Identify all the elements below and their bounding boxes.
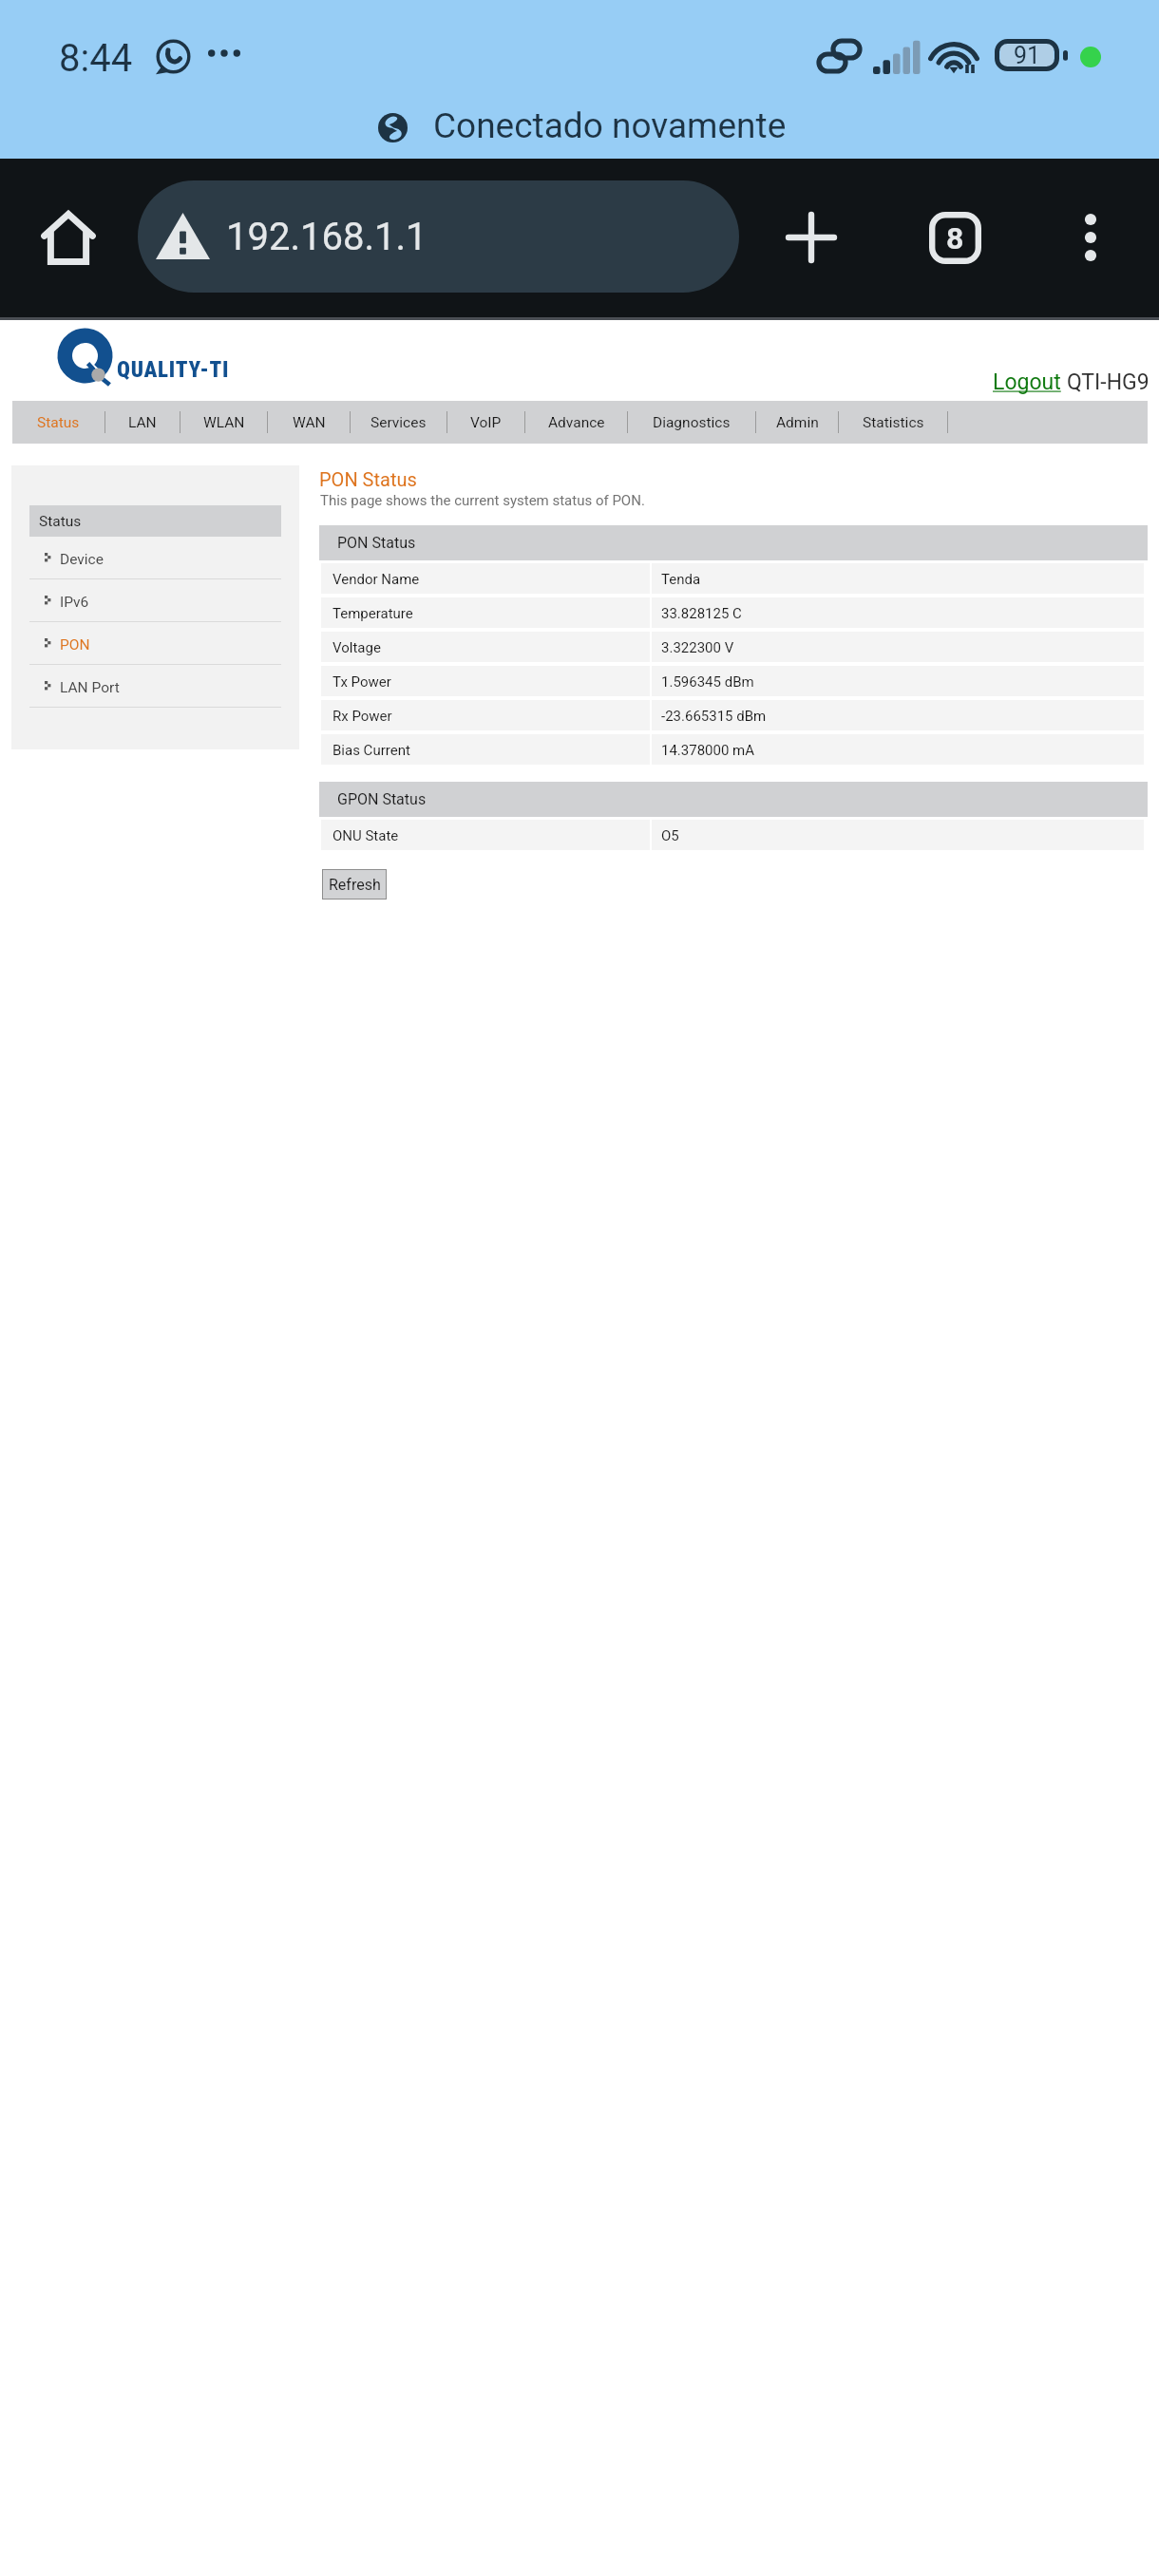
staticText: LAN	[128, 414, 157, 431]
staticText: ONU State	[332, 827, 399, 844]
staticText: Voltage	[332, 639, 381, 656]
button[interactable]: WLAN	[180, 401, 267, 444]
staticText: 1.596345 dBm	[661, 673, 754, 691]
staticText: QTI-HG9	[1067, 369, 1149, 395]
staticText: Status	[37, 414, 80, 431]
staticText: 8:44	[59, 36, 133, 81]
button[interactable]: WAN	[268, 401, 350, 444]
button[interactable]: LAN	[105, 401, 180, 444]
staticText: 3.322300 V	[661, 639, 734, 656]
button[interactable]: Statistics	[839, 401, 947, 444]
button[interactable]: New tab	[779, 205, 844, 270]
staticText: LAN Port	[60, 679, 120, 696]
button[interactable]: Logout	[993, 369, 1061, 395]
staticText: Bias Current	[332, 742, 410, 759]
staticText: O5	[661, 827, 679, 844]
staticText: 33.828125 C	[661, 605, 742, 622]
staticText: WAN	[293, 414, 326, 431]
button[interactable]: More options	[1058, 205, 1123, 270]
staticText: PON Status	[337, 534, 416, 552]
staticText: PON Status	[319, 468, 417, 490]
button[interactable]: VoIP	[447, 401, 524, 444]
button[interactable]: Device	[29, 537, 281, 578]
staticText: IPv6	[60, 594, 89, 611]
staticText: Advance	[548, 414, 605, 431]
button[interactable]: PON	[29, 622, 281, 664]
staticText: Tenda	[661, 571, 701, 588]
button[interactable]: Admin	[756, 401, 838, 444]
staticText: Device	[60, 551, 104, 568]
button[interactable]: Services	[351, 401, 446, 444]
staticText: Admin	[776, 414, 819, 431]
staticText: Temperature	[332, 605, 413, 622]
button[interactable]: Diagnostics	[628, 401, 755, 444]
staticText: 192.168.1.1	[226, 215, 427, 259]
staticText: VoIP	[470, 414, 502, 431]
button[interactable]: Status	[12, 401, 104, 444]
staticText: PON	[60, 636, 90, 653]
button[interactable]: IPv6	[29, 579, 281, 621]
staticText: 91	[1014, 42, 1041, 69]
button[interactable]: LAN Port	[29, 665, 281, 707]
staticText: Conectado novamente	[433, 105, 787, 146]
button[interactable]: 192.168.1.1	[138, 180, 739, 293]
button[interactable]: Advance	[525, 401, 627, 444]
button[interactable]: Tabs, 8 open	[922, 205, 987, 270]
staticText: This page shows the current system statu…	[320, 492, 645, 509]
staticText: 8	[946, 220, 964, 256]
staticText: Diagnostics	[653, 414, 731, 431]
staticText: Status	[39, 513, 82, 530]
staticText: -23.665315 dBm	[661, 708, 767, 725]
button[interactable]: Refresh	[322, 869, 387, 900]
staticText: QUALITY-TI	[117, 357, 230, 383]
staticText: Logout	[993, 369, 1061, 395]
staticText: Vendor Name	[332, 571, 420, 588]
staticText: Statistics	[863, 414, 924, 431]
staticText: GPON Status	[337, 790, 427, 808]
button[interactable]: Home	[36, 205, 101, 270]
staticText: Rx Power	[332, 708, 392, 725]
staticText: Tx Power	[332, 673, 391, 691]
staticText: Refresh	[329, 876, 381, 894]
staticText: 14.378000 mA	[661, 742, 755, 759]
staticText: WLAN	[203, 414, 245, 431]
staticText: Services	[370, 414, 427, 431]
